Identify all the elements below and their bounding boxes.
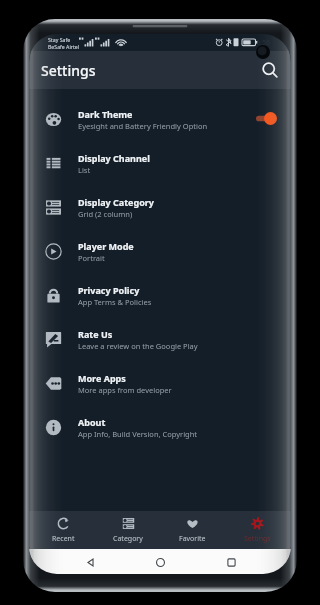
staticText: Portrait [78, 253, 105, 263]
staticText: Grid (2 column) [78, 209, 133, 219]
staticText: About [78, 416, 106, 428]
button[interactable]: Privacy Policy [29, 273, 291, 317]
staticText: App Info, Build Version, Copyright [78, 429, 198, 439]
staticText: Eyesight and Battery Friendly Option [78, 121, 208, 131]
staticText: More apps from developer [78, 385, 172, 395]
staticText: App Terms & Policies [78, 297, 152, 307]
staticText: Settings [41, 61, 96, 80]
staticText: Settings [244, 534, 271, 544]
staticText: Player Mode [78, 240, 134, 252]
staticText: Stay Safe [48, 36, 71, 43]
staticText: Privacy Policy [78, 284, 140, 296]
staticText: Display Channel [78, 152, 150, 164]
button[interactable]: Home [150, 552, 170, 572]
button[interactable]: More Apps [29, 361, 291, 405]
button[interactable]: Player Mode [29, 229, 291, 273]
staticText: More Apps [78, 372, 126, 384]
staticText: List [78, 165, 91, 175]
button[interactable]: Back [80, 552, 100, 572]
button[interactable]: Category [98, 512, 158, 549]
staticText: Leave a review on the Google Play [78, 341, 198, 351]
button[interactable]: Search [261, 61, 279, 79]
staticText: Display Category [78, 196, 154, 208]
staticText: Recent [52, 534, 75, 544]
button[interactable]: Recent [33, 512, 93, 549]
staticText: 5:56 [256, 38, 270, 48]
button[interactable]: Recents [221, 552, 241, 572]
staticText: BeSafe Airtel [48, 43, 80, 50]
button[interactable]: Display Category [29, 185, 291, 229]
staticText: Category [113, 534, 143, 544]
button[interactable]: Favorite [162, 512, 222, 549]
button[interactable]: Display Channel [29, 141, 291, 185]
button[interactable]: Rate Us [29, 317, 291, 361]
button[interactable]: About [29, 405, 291, 449]
button[interactable]: Dark Theme [29, 97, 291, 141]
staticText: Dark Theme [78, 108, 133, 120]
staticText: Rate Us [78, 328, 113, 340]
staticText: Favorite [179, 534, 206, 544]
button[interactable]: Settings [227, 512, 287, 549]
